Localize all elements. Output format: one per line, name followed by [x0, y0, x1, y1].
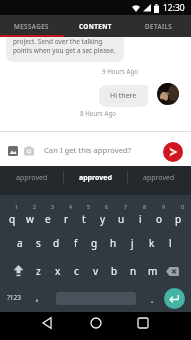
button[interactable]: q — [3, 211, 21, 227]
staticText: ?123 — [7, 293, 21, 302]
button[interactable]: p — [169, 211, 188, 227]
staticText: r — [64, 212, 69, 226]
staticText: 9 Hours Ago — [102, 67, 138, 75]
staticText: k — [149, 236, 155, 250]
button[interactable]: c — [67, 263, 86, 279]
staticText: z — [36, 264, 41, 278]
staticText: x — [55, 264, 61, 278]
staticText: v — [93, 264, 99, 278]
staticText: h — [110, 236, 117, 250]
staticText: q — [9, 212, 16, 226]
button[interactable]: x — [48, 263, 67, 279]
button[interactable]: . — [143, 283, 162, 311]
staticText: Hi there — [110, 91, 137, 101]
button[interactable]: t — [75, 211, 93, 227]
button[interactable] — [162, 263, 191, 279]
button[interactable]: ?123 — [0, 283, 28, 311]
staticText: 3 — [51, 204, 54, 211]
button[interactable]: approved — [63, 166, 127, 195]
staticText: project. Send over the talking points wh… — [13, 37, 116, 55]
staticText: y — [100, 212, 106, 226]
button[interactable]: DETAILS — [127, 15, 191, 37]
staticText: Can I get this approved? — [44, 145, 132, 155]
staticText: , — [36, 292, 39, 303]
staticText: b — [111, 264, 118, 278]
staticText: o — [156, 212, 163, 226]
button[interactable] — [42, 317, 53, 329]
button[interactable]: o — [150, 211, 169, 227]
button[interactable]: s — [29, 235, 47, 251]
staticText: j — [131, 236, 134, 250]
button[interactable]: n — [124, 263, 143, 279]
staticText: . — [151, 294, 154, 305]
staticText: approved — [79, 173, 112, 183]
button[interactable] — [163, 142, 183, 162]
button[interactable]: m — [143, 263, 162, 279]
button[interactable]: Can I get this approved? — [0, 132, 191, 166]
button[interactable]: f — [66, 235, 85, 251]
staticText: t — [82, 212, 86, 226]
button[interactable]: y — [93, 211, 112, 227]
staticText: 2 — [33, 204, 36, 211]
button[interactable]: k — [142, 235, 161, 251]
staticText: approved — [143, 173, 175, 183]
button[interactable]: e — [39, 211, 57, 227]
button[interactable] — [0, 263, 29, 279]
button[interactable] — [164, 288, 185, 309]
staticText: w — [26, 212, 34, 226]
staticText: l — [169, 236, 172, 250]
button[interactable]: l — [161, 235, 180, 251]
staticText: p — [175, 212, 182, 226]
staticText: 12:30 — [163, 2, 185, 14]
button[interactable]: w — [21, 211, 39, 227]
button[interactable]: b — [105, 263, 124, 279]
button[interactable]: MESSAGES — [0, 15, 63, 37]
staticText: approved — [16, 173, 48, 183]
staticText: 4 — [69, 204, 72, 211]
button[interactable]: approved — [0, 166, 63, 195]
staticText: DETAILS — [145, 22, 173, 31]
staticText: i — [139, 212, 142, 226]
staticText: 0 — [181, 204, 184, 211]
staticText: 8 Hours Ago — [80, 109, 116, 117]
button[interactable]: i — [131, 211, 150, 227]
staticText: e — [45, 212, 51, 226]
staticText: d — [53, 236, 60, 250]
button[interactable] — [8, 146, 18, 156]
button[interactable]: h — [104, 235, 123, 251]
staticText: 8 — [143, 204, 146, 211]
staticText: n — [130, 264, 137, 278]
button[interactable]: u — [112, 211, 131, 227]
staticText: s — [36, 236, 41, 250]
button[interactable] — [90, 317, 102, 329]
button[interactable]: approved — [127, 166, 191, 195]
staticText: c — [74, 264, 79, 278]
button[interactable]: a — [11, 235, 29, 251]
button[interactable]: CONTENT — [63, 15, 127, 37]
staticText: 1 — [15, 204, 18, 211]
staticText: CONTENT — [79, 22, 112, 31]
staticText: u — [118, 212, 125, 226]
button[interactable]: z — [29, 263, 48, 279]
staticText: 7 — [124, 204, 127, 211]
staticText: 5 — [87, 204, 90, 211]
staticText: MESSAGES — [14, 22, 49, 31]
button[interactable] — [137, 317, 149, 329]
staticText: 6 — [105, 204, 108, 211]
staticText: g — [91, 236, 98, 250]
staticText: 9 — [162, 204, 165, 211]
staticText: f — [74, 236, 78, 250]
button[interactable]: r — [57, 211, 75, 227]
staticText: m — [148, 264, 158, 278]
button[interactable]: , — [28, 283, 47, 311]
button[interactable] — [24, 146, 34, 156]
staticText: a — [17, 236, 23, 250]
button[interactable]: d — [47, 235, 66, 251]
button[interactable]: v — [86, 263, 105, 279]
button[interactable]: j — [123, 235, 142, 251]
button[interactable]: g — [85, 235, 104, 251]
